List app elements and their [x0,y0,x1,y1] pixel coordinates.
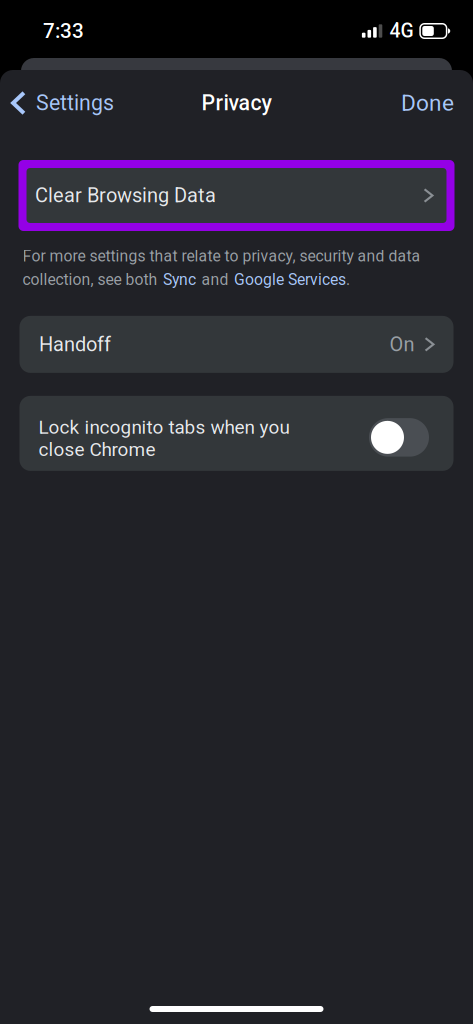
staticText: Handoff [39,333,111,356]
staticText: Sync [163,270,196,289]
staticText: On [389,333,414,356]
staticText: Privacy [201,90,271,115]
staticText: Lock incognito tabs when you close Chrom… [38,416,289,461]
staticText: collection, see both [22,270,157,289]
staticText: Clear Browsing Data [35,184,216,207]
staticText: Done [401,90,454,116]
button[interactable]: Done [383,70,473,136]
staticText: For more settings that relate to privacy… [22,247,420,265]
button[interactable]: Sync [157,270,201,289]
staticText: Settings [36,90,114,115]
button[interactable]: Clear Browsing Data [18,160,454,231]
button[interactable]: Google Services [228,270,346,289]
staticText: 7:33 [43,19,84,43]
staticText: 4G [390,20,414,42]
button[interactable]: Handoff [19,316,453,373]
staticText: Google Services [234,270,346,289]
staticText: . [346,270,350,289]
button[interactable]: Settings [0,70,126,136]
staticText: and [201,270,228,289]
